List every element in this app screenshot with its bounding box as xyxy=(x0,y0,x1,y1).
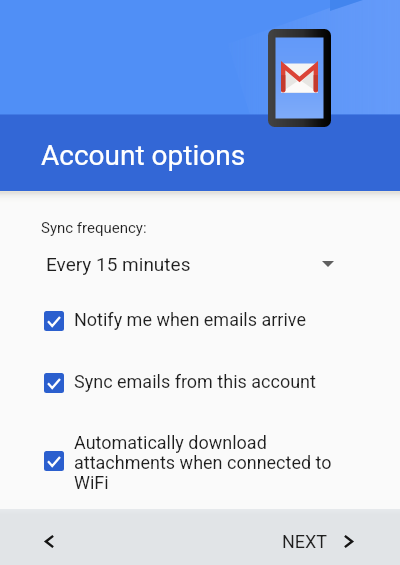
button[interactable]: Back xyxy=(29,521,69,561)
staticText: Sync emails from this account xyxy=(74,371,342,392)
button[interactable]: NEXT xyxy=(268,523,400,560)
button[interactable] xyxy=(0,311,400,331)
staticText: Account options xyxy=(41,139,246,172)
staticText: Notify me when emails arrive xyxy=(74,309,342,330)
staticText: Every 15 minutes xyxy=(46,253,191,275)
staticText: NEXT xyxy=(282,531,328,552)
staticText: Automatically download attachments when … xyxy=(74,432,342,493)
staticText: Sync frequency: xyxy=(41,219,147,237)
button[interactable] xyxy=(0,451,400,471)
button[interactable] xyxy=(0,373,400,393)
button[interactable]: Every 15 minutes xyxy=(0,248,400,282)
